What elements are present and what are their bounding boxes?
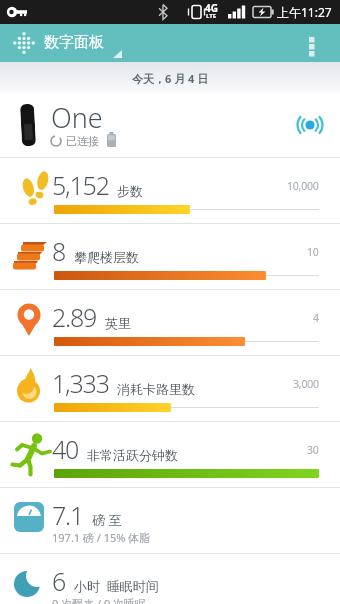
- button[interactable]: 1,333: [0, 356, 340, 422]
- button[interactable]: 8: [0, 224, 340, 290]
- staticText: 30: [307, 443, 319, 457]
- staticText: 磅 至: [92, 511, 122, 529]
- staticText: 3,000: [293, 377, 319, 391]
- staticText: 8: [52, 234, 66, 268]
- button[interactable]: One: [0, 94, 340, 157]
- staticText: 10: [307, 245, 319, 259]
- button[interactable]: 2.89: [0, 290, 340, 356]
- staticText: 2.89: [52, 300, 97, 334]
- staticText: LTE: [206, 12, 217, 20]
- button[interactable]: 5,152: [0, 158, 340, 224]
- staticText: 197.1 磅 / 15% 体脂: [52, 530, 151, 545]
- staticText: 步数: [117, 183, 143, 199]
- staticText: 5,152: [52, 168, 109, 202]
- staticText: 已连接: [66, 134, 99, 148]
- staticText: 40: [52, 432, 79, 466]
- button[interactable]: 40: [0, 422, 340, 488]
- button[interactable]: 6: [0, 554, 340, 604]
- staticText: 6: [52, 564, 66, 598]
- staticText: 7.1: [52, 498, 84, 532]
- staticText: 小时 睡眠时间: [74, 577, 159, 595]
- button[interactable]: 7.1: [0, 488, 340, 554]
- staticText: 数字面板: [44, 33, 104, 52]
- staticText: 英里: [105, 315, 131, 331]
- staticText: 消耗卡路里数: [117, 381, 195, 397]
- staticText: 1,333: [52, 366, 109, 400]
- staticText: 非常活跃分钟数: [87, 447, 178, 463]
- staticText: 4: [313, 311, 319, 325]
- button[interactable]: [300, 30, 326, 56]
- staticText: 攀爬楼层数: [74, 249, 139, 265]
- staticText: One: [51, 99, 103, 136]
- staticText: 0 次醒来 / 0 次睡眠: [52, 596, 147, 604]
- staticText: 上午11:27: [277, 4, 332, 20]
- staticText: 10,000: [287, 179, 319, 193]
- staticText: 今天，6 月 4 日: [132, 71, 209, 86]
- staticText: 4G: [205, 1, 218, 15]
